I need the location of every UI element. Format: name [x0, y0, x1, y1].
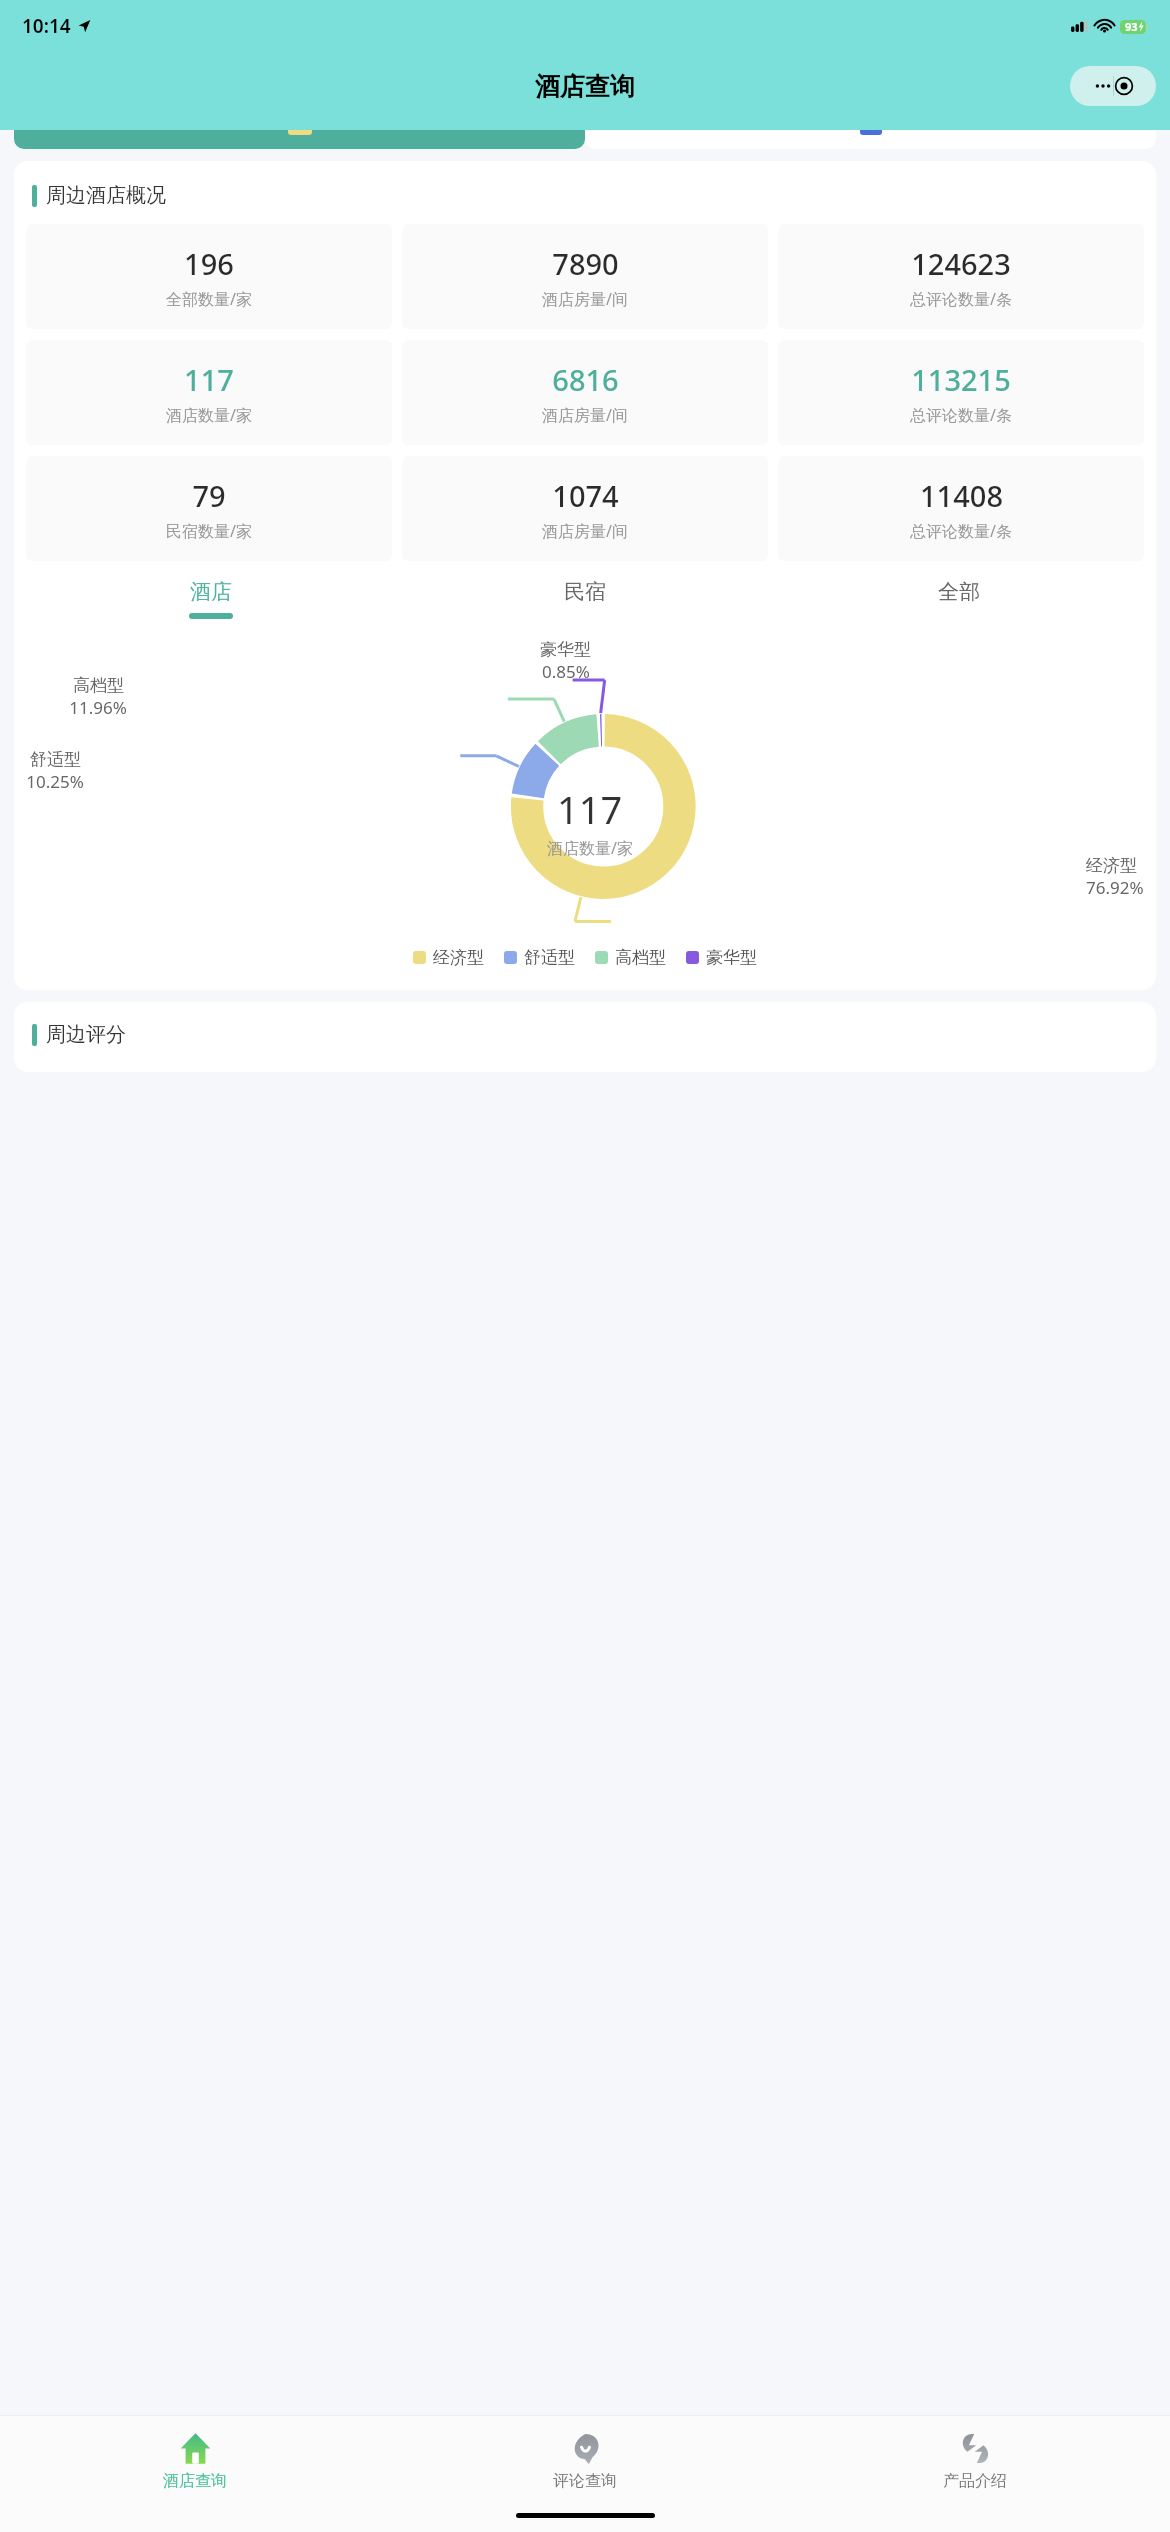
button[interactable]: 124623: [778, 224, 1144, 329]
staticText: 豪华型: [540, 639, 591, 660]
staticText: 全部数量/家: [166, 288, 252, 310]
button[interactable]: 196: [26, 224, 392, 329]
staticText: 酒店房量/间: [542, 288, 628, 310]
staticText: 民宿: [564, 579, 606, 605]
button[interactable]: 113215: [778, 340, 1144, 445]
button[interactable]: 全部: [772, 579, 1146, 619]
button[interactable]: 豪华型: [686, 947, 757, 968]
staticText: 豪华型: [706, 947, 757, 968]
button[interactable]: 舒适型: [504, 947, 575, 968]
staticText: 舒适型: [524, 947, 575, 968]
button[interactable]: 评论查询: [390, 2416, 780, 2498]
button[interactable]: 1074: [402, 456, 768, 561]
button[interactable]: 经济型: [413, 947, 484, 968]
button[interactable]: 7890: [402, 224, 768, 329]
staticText: 79: [192, 476, 226, 515]
staticText: 10:14: [22, 13, 71, 39]
staticText: 经济型: [433, 947, 484, 968]
staticText: 124623: [911, 244, 1011, 283]
staticText: 酒店数量/家: [166, 404, 252, 426]
staticText: 周边酒店概况: [46, 183, 166, 208]
staticText: 11408: [920, 476, 1003, 515]
staticText: 全部: [938, 579, 980, 605]
staticText: 76.92%: [1086, 876, 1144, 899]
button[interactable]: 6816: [402, 340, 768, 445]
staticText: 0.85%: [542, 660, 590, 683]
staticText: 7890: [552, 244, 619, 283]
staticText: 高档型: [615, 947, 666, 968]
staticText: 舒适型: [30, 749, 81, 770]
staticText: 93: [1125, 19, 1138, 34]
staticText: 酒店房量/间: [542, 520, 628, 542]
staticText: 1074: [552, 476, 619, 515]
button[interactable]: 民宿: [398, 579, 772, 619]
staticText: 11.96%: [69, 696, 127, 719]
staticText: 117: [184, 360, 234, 399]
staticText: 酒店: [190, 579, 232, 605]
staticText: 评论查询: [553, 2471, 617, 2491]
button[interactable]: 产品介绍: [780, 2416, 1170, 2498]
staticText: 117: [557, 783, 623, 835]
staticText: 酒店房量/间: [542, 404, 628, 426]
staticText: 产品介绍: [943, 2471, 1007, 2491]
staticText: 民宿数量/家: [166, 520, 252, 542]
button[interactable]: 酒店: [24, 579, 398, 619]
button[interactable]: 高档型: [595, 947, 666, 968]
staticText: 113215: [911, 360, 1011, 399]
staticText: 总评论数量/条: [910, 520, 1012, 542]
staticText: 10.25%: [26, 770, 84, 793]
staticText: 酒店查询: [163, 2471, 227, 2491]
staticText: 196: [184, 244, 234, 283]
staticText: 经济型: [1086, 855, 1137, 876]
staticText: 酒店数量/家: [547, 837, 633, 859]
staticText: 总评论数量/条: [910, 404, 1012, 426]
button[interactable]: 11408: [778, 456, 1144, 561]
staticText: 周边评分: [46, 1022, 126, 1047]
button[interactable]: 酒店查询: [0, 2416, 390, 2498]
button[interactable]: 79: [26, 456, 392, 561]
staticText: 酒店查询: [535, 71, 635, 102]
staticText: 6816: [552, 360, 619, 399]
staticText: 总评论数量/条: [910, 288, 1012, 310]
button[interactable]: Menu and close: [1070, 66, 1156, 106]
button[interactable]: 117: [26, 340, 392, 445]
staticText: 高档型: [73, 675, 124, 696]
